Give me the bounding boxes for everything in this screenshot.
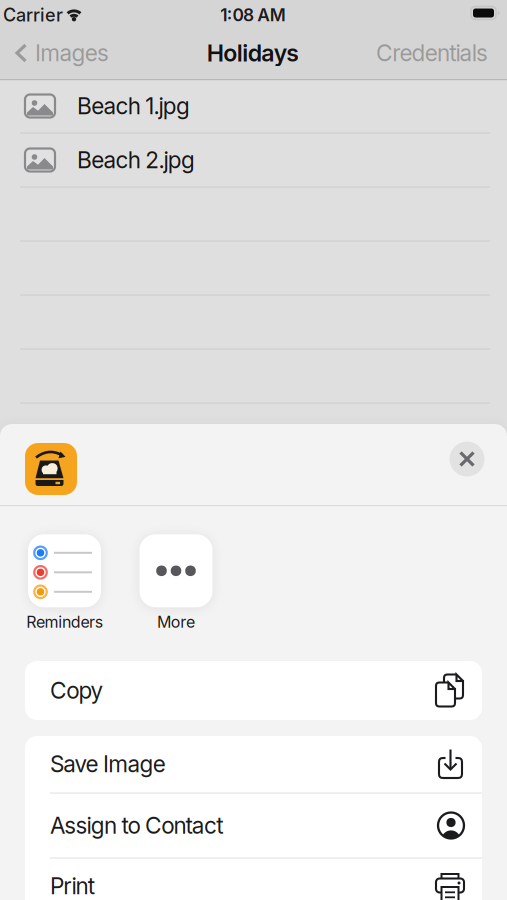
button[interactable]: Save Image xyxy=(25,736,482,792)
button[interactable]: Images xyxy=(15,35,109,71)
button[interactable]: Beach 1.jpg xyxy=(0,79,507,133)
button[interactable]: Credentials xyxy=(376,35,488,71)
staticText: Assign to Contact xyxy=(50,812,223,839)
staticText: 1:08 AM xyxy=(220,4,286,25)
button[interactable]: More xyxy=(139,534,212,632)
button[interactable] xyxy=(449,441,484,476)
button[interactable]: Beach 2.jpg xyxy=(0,133,507,187)
button[interactable]: Print xyxy=(25,858,482,900)
staticText: Print xyxy=(50,872,95,900)
staticText: Images xyxy=(35,39,109,67)
button[interactable]: Assign to Contact xyxy=(25,794,482,857)
staticText: Beach 1.jpg xyxy=(77,92,190,120)
staticText: Copy xyxy=(50,677,104,704)
staticText: Save Image xyxy=(50,750,166,778)
staticText: Carrier xyxy=(3,4,63,26)
staticText: More xyxy=(157,612,195,632)
button[interactable]: Copy xyxy=(25,661,482,720)
staticText: Credentials xyxy=(376,39,488,67)
button[interactable]: Reminders xyxy=(26,534,103,632)
staticText: Beach 2.jpg xyxy=(77,146,195,174)
staticText: Reminders xyxy=(26,612,103,632)
staticText: Holidays xyxy=(207,39,299,67)
